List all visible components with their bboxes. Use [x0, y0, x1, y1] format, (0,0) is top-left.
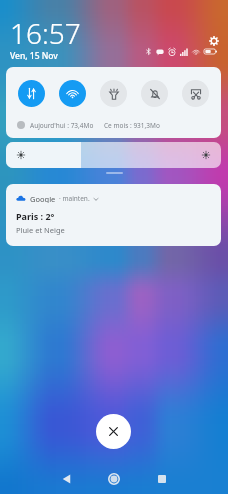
- staticText: Ce mois : 931,3Mo: [104, 121, 160, 130]
- button[interactable]: Quick setting: [18, 80, 45, 107]
- button[interactable]: Brightness: [6, 142, 221, 168]
- staticText: Aujourd'hui : 73,4Mo: [30, 121, 94, 130]
- button[interactable]: Quick setting: [59, 80, 86, 107]
- button[interactable]: Home: [97, 462, 131, 494]
- staticText: · mainten.: [59, 194, 90, 203]
- button[interactable]: Quick setting: [182, 80, 209, 107]
- staticText: Pluie et Neige: [16, 225, 65, 235]
- button[interactable]: Back: [49, 462, 83, 494]
- button[interactable]: Quick setting: [100, 80, 127, 107]
- button[interactable]: Quick setting: [141, 80, 168, 107]
- staticText: Paris : 2°: [16, 210, 55, 222]
- button[interactable]: Close: [96, 414, 131, 449]
- button[interactable]: Recents: [145, 462, 179, 494]
- staticText: Google: [30, 194, 56, 203]
- button[interactable]: Settings: [203, 30, 225, 52]
- staticText: 16:57: [10, 14, 81, 52]
- button[interactable]: Google: [6, 184, 221, 246]
- staticText: Ven, 15 Nov: [10, 50, 58, 62]
